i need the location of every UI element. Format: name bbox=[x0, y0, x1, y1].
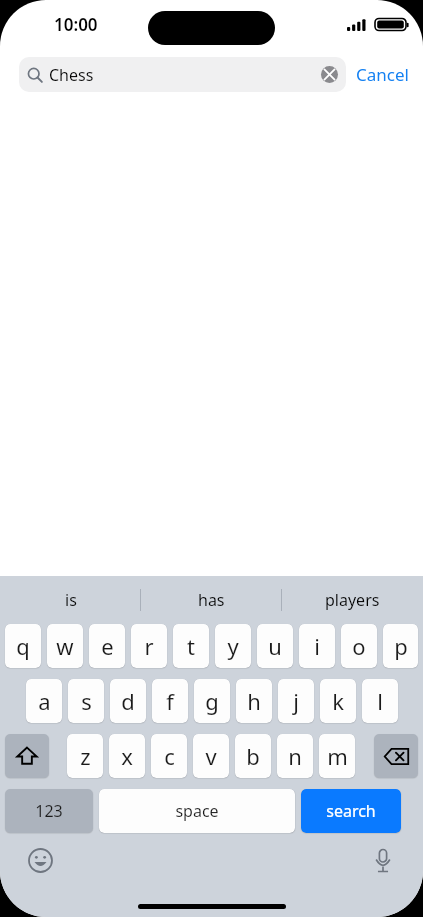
staticText: h bbox=[247, 686, 261, 716]
staticText: m bbox=[327, 741, 348, 771]
button[interactable]: j bbox=[278, 679, 314, 723]
staticText: t bbox=[187, 631, 195, 661]
button[interactable]: b bbox=[235, 734, 271, 778]
button[interactable]: z bbox=[67, 734, 103, 778]
staticText: n bbox=[288, 741, 302, 771]
staticText: c bbox=[164, 741, 175, 771]
staticText: r bbox=[144, 631, 154, 661]
button[interactable]: is bbox=[0, 576, 141, 624]
button[interactable]: 123 bbox=[5, 789, 93, 833]
button[interactable]: a bbox=[26, 679, 62, 723]
button[interactable]: Dictation bbox=[367, 844, 399, 876]
staticText: o bbox=[352, 631, 366, 661]
staticText: y bbox=[227, 631, 239, 661]
button[interactable]: v bbox=[193, 734, 229, 778]
button[interactable]: space bbox=[99, 789, 295, 833]
staticText: a bbox=[38, 686, 51, 716]
staticText: k bbox=[332, 686, 344, 716]
button[interactable]: p bbox=[383, 624, 418, 668]
button[interactable]: i bbox=[299, 624, 335, 668]
button[interactable]: k bbox=[320, 679, 356, 723]
staticText: 123 bbox=[35, 800, 63, 822]
button[interactable]: q bbox=[5, 624, 41, 668]
staticText: z bbox=[80, 741, 91, 771]
button[interactable]: r bbox=[131, 624, 167, 668]
button[interactable]: h bbox=[236, 679, 272, 723]
staticText: p bbox=[394, 631, 408, 661]
staticText: players bbox=[325, 589, 380, 611]
button[interactable]: Shift bbox=[5, 734, 49, 778]
staticText: f bbox=[166, 686, 174, 716]
button[interactable]: l bbox=[362, 679, 398, 723]
button[interactable]: u bbox=[257, 624, 293, 668]
button[interactable]: t bbox=[173, 624, 209, 668]
staticText: s bbox=[81, 686, 92, 716]
button[interactable]: search bbox=[301, 789, 401, 833]
button[interactable]: s bbox=[68, 679, 104, 723]
staticText: l bbox=[377, 686, 383, 716]
button[interactable]: o bbox=[341, 624, 377, 668]
button[interactable]: n bbox=[277, 734, 313, 778]
staticText: b bbox=[246, 741, 260, 771]
staticText: u bbox=[268, 631, 282, 661]
button[interactable]: w bbox=[47, 624, 83, 668]
button[interactable]: m bbox=[319, 734, 355, 778]
staticText: w bbox=[56, 631, 74, 661]
staticText: i bbox=[314, 631, 320, 661]
staticText: is bbox=[65, 589, 77, 611]
button[interactable]: Emoji bbox=[24, 844, 56, 876]
button[interactable]: g bbox=[194, 679, 230, 723]
button[interactable]: c bbox=[151, 734, 187, 778]
staticText: e bbox=[101, 631, 114, 661]
staticText: has bbox=[198, 589, 225, 611]
staticText: Chess bbox=[49, 64, 321, 86]
staticText: j bbox=[293, 686, 299, 716]
staticText: 10:00 bbox=[54, 13, 98, 36]
button[interactable]: f bbox=[152, 679, 188, 723]
staticText: q bbox=[16, 631, 30, 661]
button[interactable]: has bbox=[141, 576, 282, 624]
button[interactable]: Chess bbox=[19, 57, 346, 92]
staticText: g bbox=[205, 686, 219, 716]
button[interactable]: Cancel bbox=[356, 63, 409, 86]
button[interactable]: x bbox=[109, 734, 145, 778]
button[interactable]: d bbox=[110, 679, 146, 723]
staticText: d bbox=[121, 686, 135, 716]
button[interactable]: y bbox=[215, 624, 251, 668]
staticText: Cancel bbox=[356, 63, 409, 86]
staticText: x bbox=[121, 741, 133, 771]
staticText: search bbox=[326, 800, 376, 822]
staticText: space bbox=[175, 800, 219, 822]
button[interactable]: players bbox=[282, 576, 423, 624]
button[interactable]: Clear text bbox=[321, 66, 338, 83]
staticText: v bbox=[205, 741, 217, 771]
button[interactable]: e bbox=[89, 624, 125, 668]
button[interactable]: Delete bbox=[374, 734, 418, 778]
